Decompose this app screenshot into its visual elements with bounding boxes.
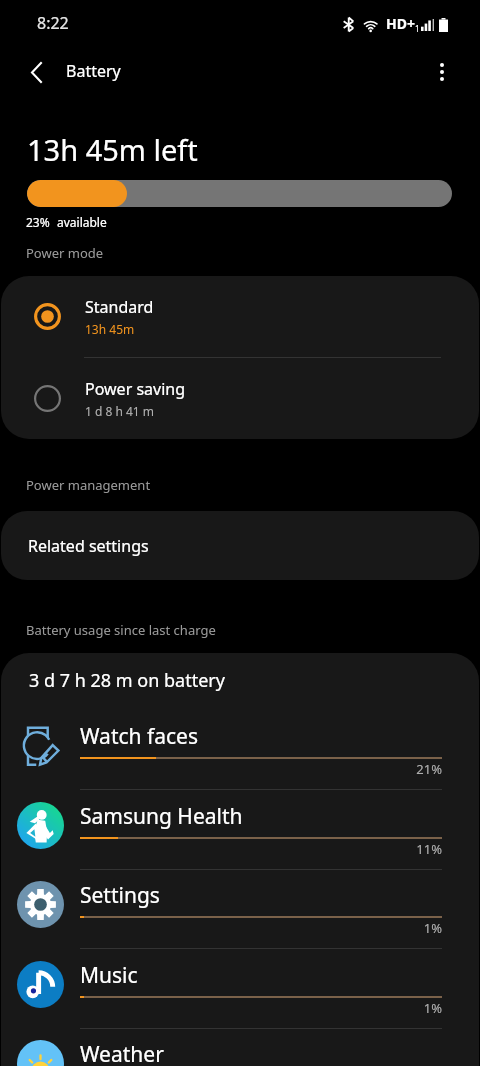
button[interactable]: Settings <box>1 865 479 944</box>
staticText: 1% <box>80 919 442 937</box>
staticText: Watch faces <box>80 722 198 751</box>
staticText: 13h 45m left <box>27 130 198 169</box>
staticText: 23% <box>26 214 50 230</box>
button[interactable]: Samsung Health <box>1 785 479 865</box>
staticText: 1 d 8 h 41 m <box>85 403 155 419</box>
staticText: Samsung Health <box>80 802 243 831</box>
staticText: Battery <box>66 60 121 82</box>
button[interactable]: Weather <box>1 1024 479 1066</box>
staticText: available <box>57 214 107 230</box>
button[interactable]: More options <box>420 50 464 94</box>
staticText: Music <box>80 961 138 990</box>
button[interactable]: Navigate up <box>14 50 58 94</box>
staticText: Power mode <box>26 244 104 262</box>
staticText: Power saving <box>85 378 186 400</box>
button[interactable]: Power saving <box>1 358 479 439</box>
button[interactable]: Related settings <box>1 511 479 580</box>
staticText: Related settings <box>28 535 149 557</box>
staticText: Standard <box>85 296 154 318</box>
staticText: Power management <box>26 476 151 494</box>
staticText: 1 <box>415 23 420 34</box>
staticText: 13h 45m <box>85 321 135 337</box>
staticText: 1% <box>80 999 442 1017</box>
staticText: 3 d 7 h 28 m on battery <box>29 668 225 693</box>
staticText: HD+ <box>386 14 415 33</box>
staticText: Battery usage since last charge <box>26 621 216 639</box>
staticText: 8:22 <box>37 12 69 34</box>
staticText: Settings <box>80 881 160 910</box>
button[interactable]: Watch faces <box>1 706 479 785</box>
button[interactable]: Standard <box>1 276 479 357</box>
button[interactable]: Music <box>1 944 479 1024</box>
staticText: Weather <box>80 1040 164 1066</box>
staticText: 11% <box>80 840 442 858</box>
staticText: 21% <box>80 760 442 778</box>
